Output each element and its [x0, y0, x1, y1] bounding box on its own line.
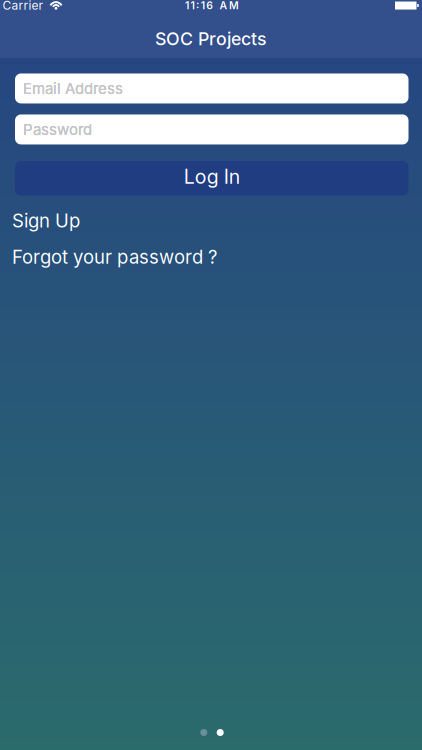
textField[interactable]: Email Address [23, 79, 408, 97]
button[interactable]: Log In [15, 161, 408, 195]
staticText: Password [23, 120, 92, 138]
staticText: Log In [184, 165, 240, 188]
staticText: SOC Projects [155, 28, 267, 49]
button[interactable]: Forgot your password ? [12, 246, 217, 268]
staticText: Forgot your password ? [12, 246, 217, 268]
staticText: 11:16 AM [185, 0, 239, 12]
button[interactable]: Sign Up [12, 209, 80, 232]
staticText: Email Address [23, 79, 123, 97]
staticText: Sign Up [12, 209, 80, 232]
secureTextField[interactable]: Password [23, 120, 408, 138]
staticText: Carrier [2, 0, 43, 13]
